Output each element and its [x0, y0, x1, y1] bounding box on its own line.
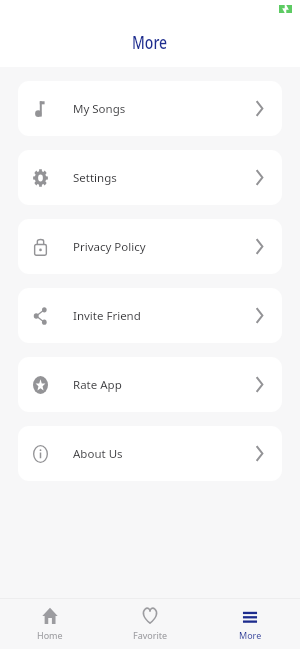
button[interactable]: About Us — [18, 426, 282, 481]
button[interactable]: Favorite — [100, 599, 200, 649]
button[interactable]: Invite Friend — [18, 288, 282, 343]
staticText: More — [239, 629, 262, 641]
staticText: Invite Friend — [73, 308, 141, 324]
button[interactable]: Home — [0, 599, 100, 649]
staticText: Home — [37, 629, 63, 641]
staticText: Settings — [73, 170, 117, 186]
button[interactable]: My Songs — [18, 81, 282, 136]
staticText: Rate App — [73, 377, 122, 393]
button[interactable]: Privacy Policy — [18, 219, 282, 274]
button[interactable]: Settings — [18, 150, 282, 205]
staticText: Privacy Policy — [73, 239, 146, 255]
staticText: Favorite — [133, 629, 168, 641]
staticText: My Songs — [73, 101, 126, 117]
staticText: More — [132, 31, 168, 54]
button[interactable]: More — [200, 599, 300, 649]
staticText: About Us — [73, 446, 123, 462]
button[interactable]: Rate App — [18, 357, 282, 412]
other: Resize — [279, 5, 292, 13]
